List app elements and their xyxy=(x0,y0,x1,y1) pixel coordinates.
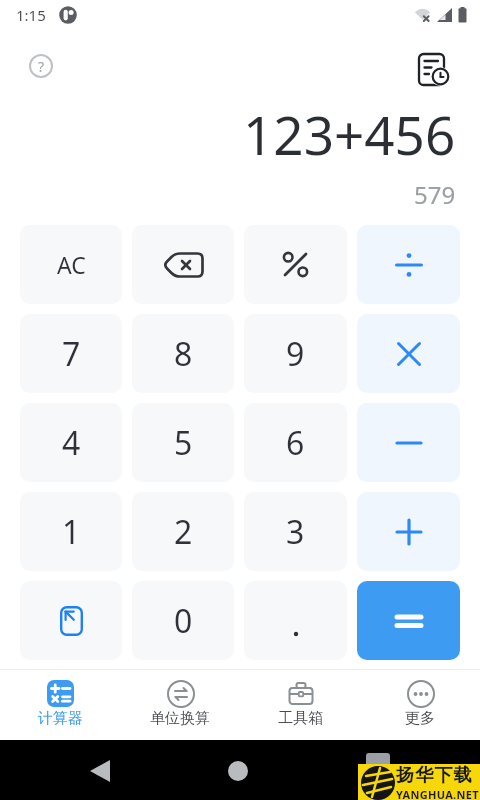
staticText: 工具箱 xyxy=(278,709,323,728)
button[interactable] xyxy=(357,314,460,393)
button[interactable] xyxy=(20,581,122,660)
staticText: 扬华下载 xyxy=(396,764,473,787)
staticText: 1 xyxy=(62,510,81,554)
staticText: 0 xyxy=(174,599,193,643)
button[interactable]: 2 xyxy=(132,492,234,571)
button[interactable] xyxy=(357,225,460,304)
staticText: 579 xyxy=(414,178,456,211)
staticText: 7 xyxy=(62,332,81,376)
button[interactable]: ? xyxy=(28,53,54,79)
staticText: 123+456 xyxy=(243,98,456,170)
staticText: 6 xyxy=(286,421,305,465)
staticText: AC xyxy=(57,249,86,280)
button[interactable] xyxy=(357,403,460,482)
button[interactable]: 更多 xyxy=(360,670,480,740)
button[interactable] xyxy=(132,225,234,304)
button[interactable] xyxy=(357,581,460,660)
button[interactable]: 9 xyxy=(244,314,347,393)
button[interactable]: 单位换算 xyxy=(120,670,240,740)
button[interactable]: 1 xyxy=(20,492,122,571)
staticText: 计算器 xyxy=(38,709,83,728)
button[interactable]: 0 xyxy=(132,581,234,660)
staticText: 2 xyxy=(174,510,193,554)
button[interactable]: 4 xyxy=(20,403,122,482)
button[interactable] xyxy=(412,50,454,92)
button[interactable]: 5 xyxy=(132,403,234,482)
staticText: ? xyxy=(38,57,45,76)
button[interactable]: 8 xyxy=(132,314,234,393)
staticText: 更多 xyxy=(405,709,435,728)
button[interactable] xyxy=(357,492,460,571)
button[interactable]: 6 xyxy=(244,403,347,482)
staticText: YANGHUA.NET xyxy=(396,787,479,800)
staticText: 3 xyxy=(286,510,305,554)
staticText: 单位换算 xyxy=(150,709,210,728)
button[interactable] xyxy=(244,225,347,304)
button[interactable]: 计算器 xyxy=(0,670,120,740)
staticText: 9 xyxy=(286,332,305,376)
button[interactable]: 3 xyxy=(244,492,347,571)
staticText: 5 xyxy=(174,421,193,465)
button[interactable]: AC xyxy=(20,225,122,304)
staticText: 8 xyxy=(174,332,193,376)
button[interactable]: 7 xyxy=(20,314,122,393)
button[interactable]: 工具箱 xyxy=(240,670,360,740)
button[interactable] xyxy=(244,581,347,660)
staticText: 1:15 xyxy=(16,5,46,25)
staticText: 4 xyxy=(62,421,81,465)
